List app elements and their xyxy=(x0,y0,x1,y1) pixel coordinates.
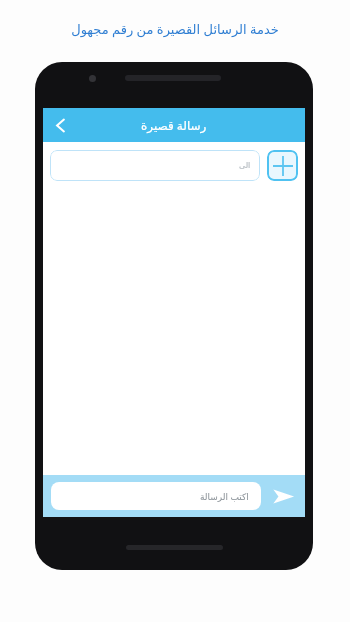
staticText: اكتب الرسالة xyxy=(200,490,249,502)
button[interactable]: الى xyxy=(50,150,260,181)
button[interactable]: Send xyxy=(267,480,299,512)
button[interactable]: اكتب الرسالة xyxy=(51,482,261,510)
button[interactable]: Add recipient xyxy=(267,150,298,181)
staticText: خدمة الرسائل القصيرة من رقم مجهول xyxy=(0,20,350,38)
staticText: الى xyxy=(239,161,251,170)
button[interactable]: Back xyxy=(43,108,77,142)
staticText: رسالة قصيرة xyxy=(141,117,207,133)
